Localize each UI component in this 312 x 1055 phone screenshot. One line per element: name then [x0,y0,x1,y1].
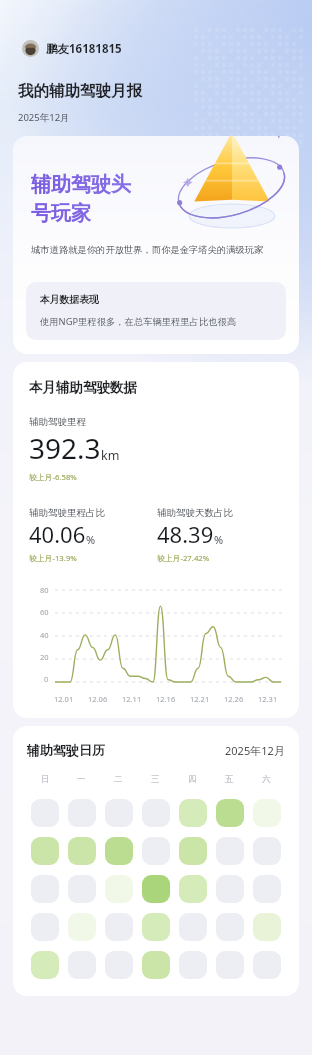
staticText: 12.06 [88,694,108,704]
button[interactable] [105,837,133,865]
button[interactable] [31,951,59,979]
staticText: 0 [44,674,49,684]
staticText: 40.06 [29,519,86,549]
staticText: % [86,532,96,547]
button[interactable]: 金字塔奖杯 [13,136,299,354]
staticText: 辅助驾驶里程占比 [29,507,105,519]
button[interactable] [216,837,244,865]
button[interactable] [253,913,281,941]
staticText: 辅助驾驶里程 [29,416,86,428]
button[interactable] [179,875,207,903]
staticText: 号玩家 [31,201,91,226]
staticText: 一 [77,774,86,785]
button[interactable] [179,951,207,979]
other: 用户头像 [22,40,39,57]
staticText: 本月数据表现 [40,294,99,306]
button[interactable] [68,799,96,827]
staticText: 本月辅助驾驶数据 [29,379,137,396]
staticText: 12.26 [224,694,244,704]
button[interactable] [105,951,133,979]
button[interactable] [142,799,170,827]
button[interactable] [142,913,170,941]
other: 金字塔奖杯 [167,136,297,228]
button[interactable] [216,951,244,979]
staticText: 60 [40,607,49,617]
button[interactable] [216,799,244,827]
staticText: 12.16 [156,694,176,704]
button[interactable] [105,913,133,941]
button[interactable] [68,913,96,941]
button[interactable] [68,837,96,865]
staticText: 392.3 [29,429,101,467]
staticText: 20 [40,652,49,662]
staticText: % [214,532,224,547]
staticText: 三 [151,774,160,785]
staticText: 城市道路就是你的开放世界，而你是金字塔尖的满级玩家 [31,244,264,256]
staticText: 2025年12月 [225,743,285,758]
button[interactable] [253,837,281,865]
button[interactable]: 本月数据表现 [26,282,286,340]
button[interactable] [142,875,170,903]
button[interactable] [253,951,281,979]
staticText: 辅助驾驶头 [31,172,131,197]
button[interactable] [105,875,133,903]
button[interactable] [68,951,96,979]
button[interactable]: 本月辅助驾驶数据 [13,362,299,718]
button[interactable] [179,837,207,865]
button[interactable] [142,951,170,979]
staticText: 使用NGP里程很多，在总车辆里程里占比也很高 [40,315,237,328]
staticText: 12.11 [122,694,142,704]
button[interactable] [105,799,133,827]
staticText: 12.01 [54,694,74,704]
staticText: 80 [40,585,49,595]
staticText: 12.21 [190,694,210,704]
button[interactable] [179,799,207,827]
staticText: 辅助驾驶天数占比 [157,507,233,519]
staticText: km [101,447,120,464]
staticText: 12.31 [258,694,278,704]
staticText: 四 [188,774,197,785]
staticText: 2025年12月 [18,111,70,124]
staticText: 六 [262,774,271,785]
button[interactable] [216,913,244,941]
staticText: 鹏友16181815 [46,41,122,57]
button[interactable] [31,799,59,827]
button[interactable] [179,913,207,941]
staticText: 二 [114,774,123,785]
staticText: 五 [225,774,234,785]
staticText: 日 [41,774,50,785]
button[interactable] [253,875,281,903]
button[interactable] [31,837,59,865]
staticText: 48.39 [157,519,214,549]
button[interactable]: 辅助驾驶日历 [13,726,299,996]
staticText: 我的辅助驾驶月报 [18,81,142,101]
staticText: 辅助驾驶日历 [27,742,105,758]
button[interactable] [31,913,59,941]
button[interactable] [68,875,96,903]
staticText: 较上月-13.9% [29,553,77,564]
button[interactable] [142,837,170,865]
button[interactable]: 用户头像 [20,38,124,59]
staticText: 较上月-27.42% [157,553,210,564]
button[interactable] [253,799,281,827]
staticText: 40 [40,630,49,640]
button[interactable] [216,875,244,903]
staticText: 较上月-6.58% [29,472,77,483]
button[interactable] [31,875,59,903]
